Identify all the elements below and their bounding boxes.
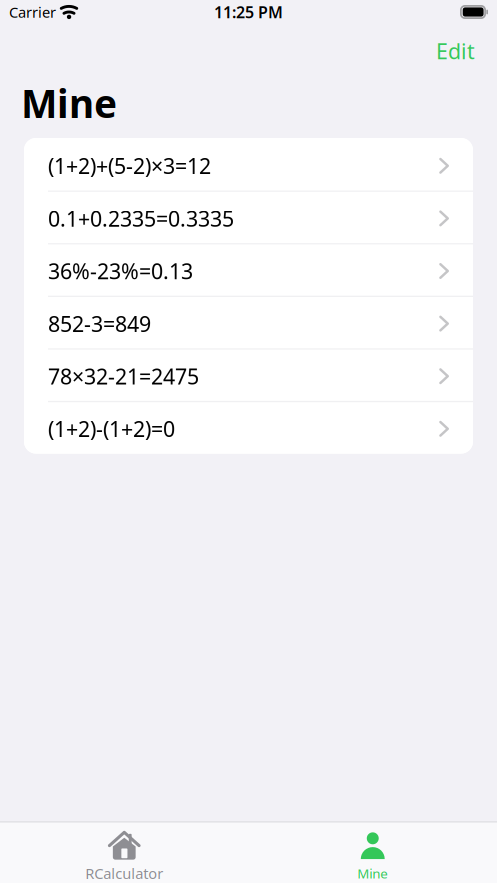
button[interactable]: Edit	[430, 33, 481, 69]
staticText: (1+2)+(5-2)×3=12	[48, 152, 211, 180]
button[interactable]: (1+2)+(5-2)×3=12	[24, 138, 473, 191]
staticText: Edit	[436, 37, 475, 65]
staticText: 36%-23%=0.13	[48, 257, 193, 285]
button[interactable]: RCalculator	[0, 823, 248, 883]
staticText: 78×32-21=2475	[48, 362, 199, 390]
staticText: Mine	[21, 77, 117, 129]
button[interactable]: 36%-23%=0.13	[24, 243, 473, 296]
button[interactable]: (1+2)-(1+2)=0	[24, 401, 473, 454]
staticText: Carrier	[9, 2, 56, 22]
staticText: 852-3=849	[48, 309, 151, 338]
staticText: (1+2)-(1+2)=0	[48, 415, 175, 443]
staticText: RCalculator	[85, 864, 163, 883]
button[interactable]: 78×32-21=2475	[24, 348, 473, 401]
staticText: Mine	[357, 864, 388, 882]
staticText: 0.1+0.2335=0.3335	[48, 204, 234, 232]
staticText: 11:25 PM	[214, 1, 283, 23]
button[interactable]: Mine	[248, 823, 497, 883]
button[interactable]: 852-3=849	[24, 296, 473, 348]
button[interactable]: 0.1+0.2335=0.3335	[24, 191, 473, 243]
